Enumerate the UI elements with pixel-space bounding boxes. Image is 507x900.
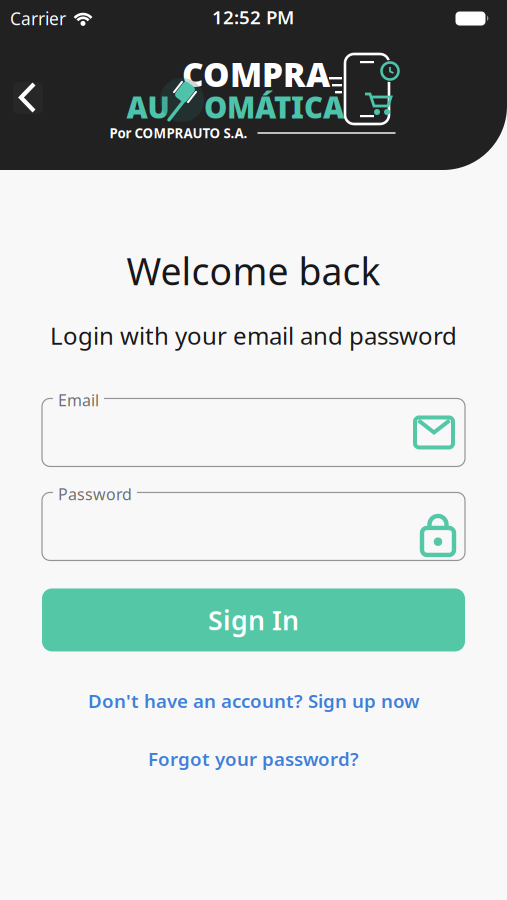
staticText: Welcome back xyxy=(126,246,380,296)
button[interactable]: Back xyxy=(13,82,43,114)
button[interactable]: Don't have an account? Sign up now xyxy=(88,688,419,713)
staticText: OMÁTICA xyxy=(204,87,344,126)
staticText: AU xyxy=(126,87,169,126)
staticText: Login with your email and password xyxy=(50,320,457,351)
staticText: Por COMPRAUTO S.A. xyxy=(109,124,247,142)
staticText: Email xyxy=(58,389,99,411)
staticText: Forgot your password? xyxy=(148,746,359,771)
button[interactable]: Forgot your password? xyxy=(148,746,359,771)
staticText: Sign In xyxy=(208,602,299,638)
staticText: COMPRA xyxy=(182,52,330,96)
staticText: 12:52 PM xyxy=(212,5,294,29)
staticText: Password xyxy=(58,483,132,505)
button[interactable]: Password xyxy=(42,492,465,560)
button[interactable]: Email xyxy=(42,398,465,466)
staticText: Don't have an account? Sign up now xyxy=(88,688,419,713)
button[interactable]: Sign In xyxy=(42,588,465,651)
staticText: Carrier xyxy=(10,7,66,30)
